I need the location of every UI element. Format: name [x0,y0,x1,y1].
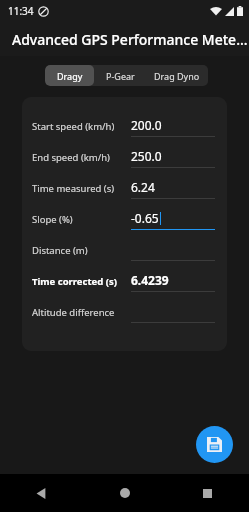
button[interactable]: Time measured (s) [22,173,227,204]
staticText: Distance (m) (optional) [32,244,131,257]
staticText: Altitude difference (m) [32,306,131,319]
staticText: 6.24 [131,179,155,195]
button[interactable]: Save [196,426,233,463]
button[interactable]: Home [83,474,166,512]
staticText: Time measured (s) [32,182,131,195]
staticText: Drag Dyno [154,70,200,82]
staticText: -0.65 [131,210,159,226]
staticText: 6.4239 [131,272,169,288]
staticText: 11:34 [8,4,34,18]
button[interactable]: End speed (km/h) [22,142,227,173]
button[interactable]: Start speed (km/h) [22,111,227,142]
staticText: 200.0 [131,117,162,133]
button[interactable]: P-Gear [94,65,146,86]
staticText: Dragy [57,70,83,82]
button[interactable]: Slope (%) [22,204,227,235]
button[interactable]: Drag Dyno [146,65,208,86]
button[interactable]: Altitude difference (m) [22,297,227,328]
button[interactable]: Distance (m) (optional) [22,235,227,266]
staticText: Slope (%) [32,213,131,226]
button[interactable]: Back [0,474,83,512]
staticText: Advanced GPS Performance Mete… [12,30,248,49]
button[interactable]: Dragy [45,65,94,86]
staticText: Start speed (km/h) [32,120,131,133]
staticText: 250.0 [131,148,162,164]
staticText: P-Gear [106,70,135,82]
staticText: Time corrected (s) [32,275,131,288]
button[interactable]: Time corrected (s) [22,266,227,297]
staticText: End speed (km/h) [32,151,131,164]
button[interactable]: Recent apps [166,474,249,512]
